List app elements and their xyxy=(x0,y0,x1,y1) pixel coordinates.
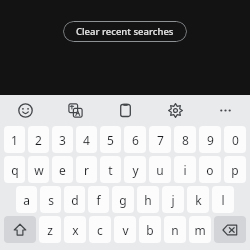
button[interactable]: x xyxy=(64,216,86,243)
staticText: u xyxy=(156,162,164,178)
button[interactable]: e xyxy=(52,156,73,183)
button[interactable]: z xyxy=(39,216,61,243)
staticText: i xyxy=(183,162,187,178)
button[interactable]: 9 xyxy=(199,126,221,153)
button[interactable]: c xyxy=(89,216,111,243)
staticText: c xyxy=(97,222,103,238)
button[interactable]: j xyxy=(162,186,184,213)
button[interactable]: y xyxy=(124,156,146,183)
button[interactable]: i xyxy=(174,156,196,183)
staticText: Clear recent searches xyxy=(76,25,174,38)
staticText: e xyxy=(59,162,66,178)
button[interactable]: Settings xyxy=(150,95,200,126)
staticText: 6 xyxy=(132,132,139,148)
staticText: m xyxy=(194,222,206,238)
button[interactable]: s xyxy=(40,186,61,213)
staticText: a xyxy=(23,192,30,208)
button[interactable]: Emoji xyxy=(0,95,50,126)
staticText: b xyxy=(146,222,154,238)
button[interactable]: 2 xyxy=(28,126,49,153)
staticText: g xyxy=(119,192,127,208)
staticText: h xyxy=(144,192,152,208)
button[interactable]: 4 xyxy=(76,126,97,153)
button[interactable]: h xyxy=(137,186,159,213)
button[interactable]: b xyxy=(139,216,161,243)
button[interactable]: t xyxy=(100,156,121,183)
button[interactable]: Backspace xyxy=(214,216,246,243)
staticText: p xyxy=(231,162,239,178)
staticText: 0 xyxy=(232,132,239,148)
staticText: 5 xyxy=(107,132,114,148)
staticText: y xyxy=(132,162,139,178)
staticText: z xyxy=(47,222,53,238)
button[interactable]: q xyxy=(4,156,25,183)
staticText: 2 xyxy=(35,132,42,148)
button[interactable]: More options xyxy=(200,95,250,126)
button[interactable]: Shift xyxy=(4,216,36,243)
button[interactable]: 7 xyxy=(149,126,171,153)
staticText: d xyxy=(71,192,79,208)
button[interactable]: 1 xyxy=(4,126,25,153)
button[interactable]: v xyxy=(114,216,136,243)
button[interactable]: o xyxy=(199,156,221,183)
staticText: j xyxy=(171,192,175,208)
staticText: q xyxy=(11,162,19,178)
staticText: k xyxy=(195,192,202,208)
button[interactable]: u xyxy=(149,156,171,183)
staticText: l xyxy=(221,192,225,208)
staticText: 4 xyxy=(83,132,90,148)
staticText: 7 xyxy=(157,132,164,148)
staticText: v xyxy=(122,222,129,238)
staticText: t xyxy=(108,162,113,178)
button[interactable]: Translate xyxy=(50,95,100,126)
staticText: 1 xyxy=(11,132,18,148)
button[interactable]: Clipboard xyxy=(100,95,150,126)
staticText: r xyxy=(84,162,89,178)
button[interactable]: r xyxy=(76,156,97,183)
button[interactable]: p xyxy=(224,156,246,183)
staticText: w xyxy=(34,162,44,178)
button[interactable]: 6 xyxy=(124,126,146,153)
button[interactable]: 0 xyxy=(224,126,246,153)
button[interactable]: d xyxy=(64,186,85,213)
button[interactable]: 8 xyxy=(174,126,196,153)
button[interactable]: Clear recent searches xyxy=(63,21,187,42)
staticText: s xyxy=(48,192,54,208)
button[interactable]: k xyxy=(187,186,209,213)
staticText: n xyxy=(171,222,179,238)
staticText: 3 xyxy=(59,132,66,148)
button[interactable]: w xyxy=(28,156,49,183)
staticText: f xyxy=(96,192,101,208)
button[interactable]: n xyxy=(164,216,186,243)
button[interactable]: 5 xyxy=(100,126,121,153)
button[interactable]: l xyxy=(212,186,234,213)
staticText: 8 xyxy=(182,132,189,148)
staticText: x xyxy=(72,222,79,238)
staticText: o xyxy=(206,162,214,178)
staticText: 9 xyxy=(207,132,214,148)
button[interactable]: a xyxy=(16,186,37,213)
button[interactable]: 3 xyxy=(52,126,73,153)
button[interactable]: f xyxy=(88,186,109,213)
button[interactable]: m xyxy=(189,216,211,243)
button[interactable]: g xyxy=(112,186,134,213)
